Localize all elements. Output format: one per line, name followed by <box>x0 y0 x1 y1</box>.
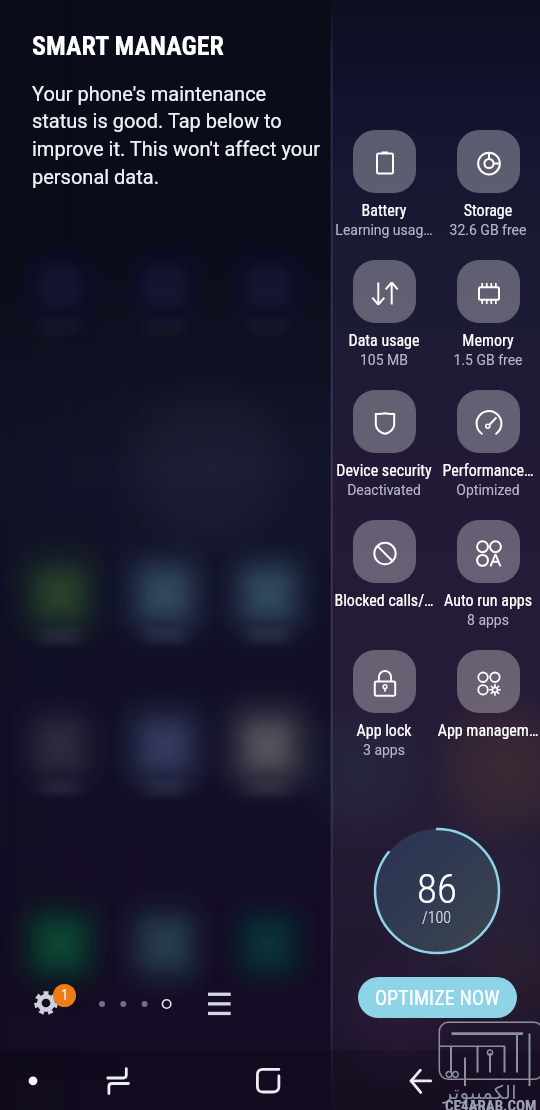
button[interactable]: Home <box>252 1063 282 1093</box>
button[interactable]: Settings <box>34 991 58 1015</box>
staticText: Optimized <box>436 482 540 498</box>
button[interactable]: App managem… <box>436 650 540 740</box>
staticText: Data usage <box>332 331 436 350</box>
button[interactable]: Storage <box>436 130 540 238</box>
button[interactable]: Recent apps <box>103 1063 133 1093</box>
staticText: SMART MANAGER <box>32 31 224 61</box>
staticText: Learning usag… <box>332 222 436 238</box>
button[interactable]: Auto run apps <box>436 520 540 628</box>
staticText: Performance… <box>436 461 540 480</box>
staticText: Memory <box>436 331 540 350</box>
staticText: Storage <box>436 201 540 220</box>
staticText: Device security <box>332 461 436 480</box>
staticText: 86 <box>417 865 457 913</box>
staticText: OPTIMIZE NOW <box>375 986 500 1009</box>
button[interactable]: Performance… <box>436 390 540 498</box>
button[interactable]: Back <box>405 1065 435 1095</box>
button[interactable]: Device security <box>332 390 436 498</box>
staticText: Battery <box>332 201 436 220</box>
staticText: Auto run apps <box>436 591 540 610</box>
button[interactable]: Menu <box>19 1067 47 1095</box>
button[interactable]: Data usage <box>332 260 436 368</box>
staticText: Blocked calls/… <box>332 591 436 610</box>
staticText: 105 MB <box>332 352 436 368</box>
button[interactable]: Device score 86 out of 100 <box>373 827 501 955</box>
staticText: 1.5 GB free <box>436 352 540 368</box>
staticText: App lock <box>332 721 436 740</box>
staticText: CE4ARAB.COM <box>445 1097 537 1110</box>
button[interactable]: Battery <box>332 130 436 238</box>
staticText: Deactivated <box>332 482 436 498</box>
staticText: 8 apps <box>436 612 540 628</box>
staticText: 32.6 GB free <box>436 222 540 238</box>
button[interactable]: App lock <box>332 650 436 758</box>
button[interactable]: Blocked calls/… <box>332 520 436 610</box>
staticText: 3 apps <box>332 742 436 758</box>
staticText: الكمبيوتر الكفي <box>443 1079 540 1110</box>
staticText: /100 <box>422 908 452 927</box>
button[interactable]: Memory <box>436 260 540 368</box>
staticText: Your phone's maintenance status is good.… <box>32 82 322 189</box>
staticText: 1 <box>61 986 69 1004</box>
button[interactable]: OPTIMIZE NOW <box>358 977 517 1018</box>
staticText: App managem… <box>436 721 540 740</box>
button[interactable]: Apps <box>205 988 233 1016</box>
